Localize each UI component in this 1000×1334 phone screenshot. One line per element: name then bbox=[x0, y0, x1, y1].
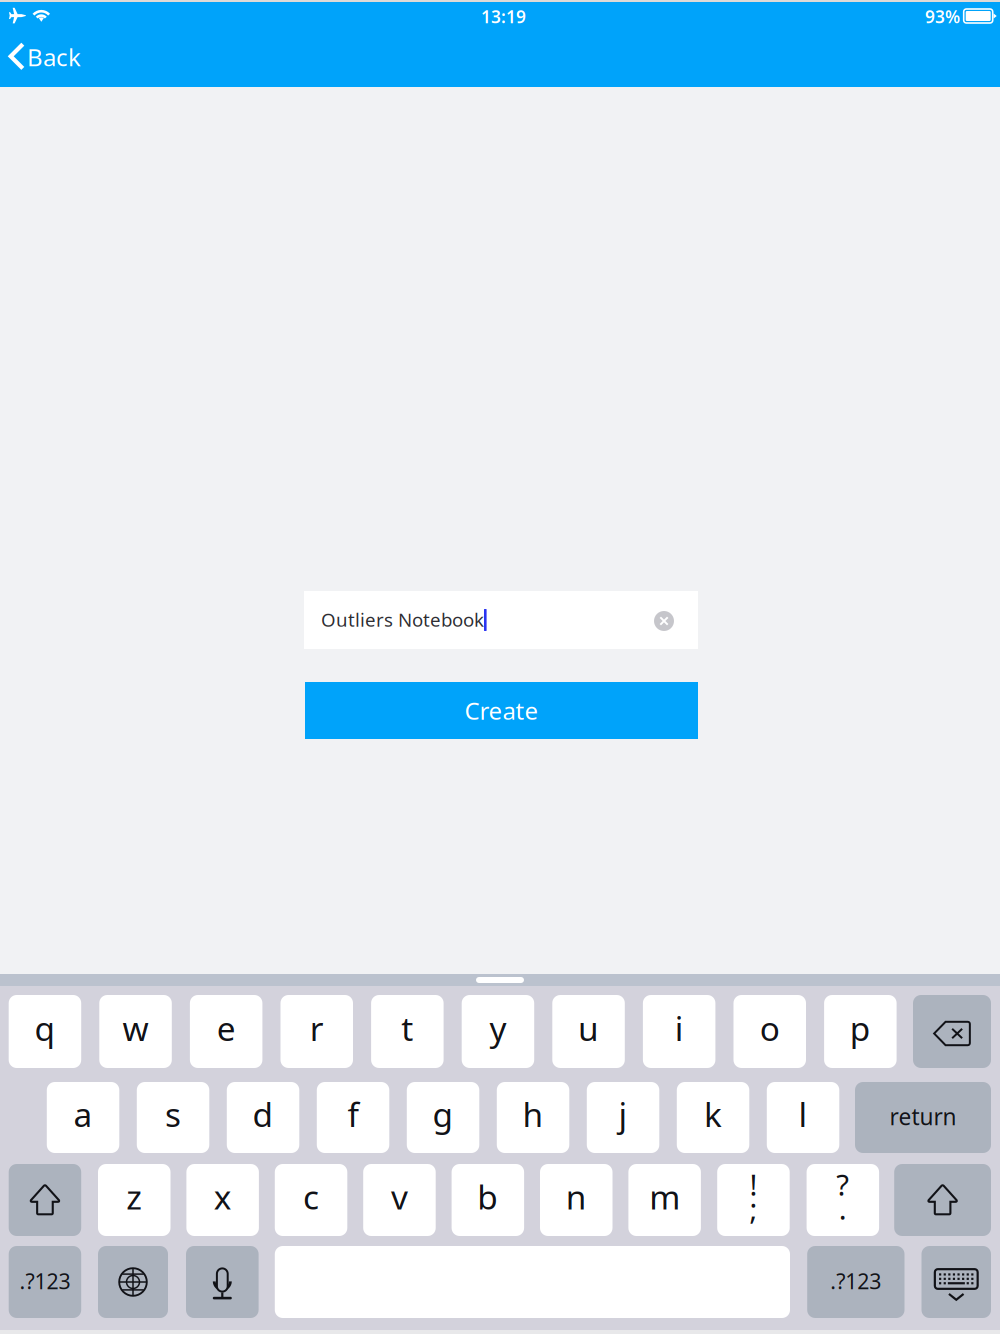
button[interactable]: s bbox=[137, 1082, 209, 1153]
button[interactable]: c bbox=[275, 1164, 347, 1236]
button[interactable]: Shift bbox=[894, 1164, 991, 1236]
button[interactable]: Delete bbox=[913, 995, 991, 1068]
button[interactable]: r bbox=[280, 995, 353, 1068]
button[interactable]: .?123 bbox=[807, 1246, 904, 1318]
button[interactable]: q bbox=[9, 995, 81, 1068]
button[interactable]: d bbox=[227, 1082, 299, 1153]
button[interactable]: p bbox=[824, 995, 897, 1068]
staticText: f bbox=[348, 1092, 359, 1136]
button[interactable]: ? bbox=[807, 1164, 879, 1236]
staticText: o bbox=[760, 1006, 780, 1050]
button[interactable]: x bbox=[186, 1164, 259, 1236]
staticText: ; bbox=[749, 1189, 757, 1228]
button[interactable]: Hide keyboard bbox=[921, 1246, 991, 1318]
staticText: z bbox=[126, 1174, 142, 1219]
button[interactable]: g bbox=[407, 1082, 479, 1153]
button[interactable]: j bbox=[587, 1082, 659, 1153]
button[interactable]: Clear text bbox=[654, 611, 674, 631]
staticText: h bbox=[522, 1092, 543, 1136]
staticText: q bbox=[34, 1006, 55, 1050]
button[interactable]: return bbox=[855, 1082, 991, 1153]
staticText: ! bbox=[749, 1165, 757, 1204]
staticText: d bbox=[253, 1092, 274, 1136]
button[interactable]: Back bbox=[0, 38, 100, 86]
button[interactable]: ! bbox=[717, 1164, 790, 1236]
staticText: . bbox=[839, 1189, 847, 1228]
button[interactable]: b bbox=[452, 1164, 524, 1236]
staticText: Create bbox=[464, 695, 538, 726]
button[interactable]: n bbox=[540, 1164, 612, 1236]
staticText: g bbox=[433, 1092, 454, 1136]
staticText: .?123 bbox=[19, 1267, 70, 1295]
staticText: j bbox=[618, 1092, 627, 1136]
button[interactable]: h bbox=[497, 1082, 569, 1153]
button[interactable]: i bbox=[643, 995, 715, 1068]
button[interactable]: u bbox=[552, 995, 625, 1068]
button[interactable]: Next keyboard bbox=[98, 1246, 168, 1318]
button[interactable]: .?123 bbox=[9, 1246, 81, 1318]
button[interactable]: v bbox=[363, 1164, 436, 1236]
staticText: n bbox=[566, 1174, 587, 1219]
staticText: 93% bbox=[925, 5, 960, 28]
button[interactable]: k bbox=[677, 1082, 749, 1153]
staticText: Back bbox=[27, 41, 81, 73]
staticText: w bbox=[122, 1006, 148, 1050]
staticText: m bbox=[649, 1174, 680, 1219]
staticText: return bbox=[889, 1101, 956, 1131]
button[interactable]: Dictation bbox=[186, 1246, 259, 1318]
button[interactable]: Shift bbox=[9, 1164, 81, 1236]
staticText: 13:19 bbox=[481, 5, 526, 28]
staticText: b bbox=[477, 1174, 498, 1219]
staticText: p bbox=[850, 1006, 871, 1050]
button[interactable]: z bbox=[98, 1164, 170, 1236]
staticText: l bbox=[798, 1092, 807, 1136]
staticText: e bbox=[217, 1006, 236, 1050]
staticText: r bbox=[310, 1006, 324, 1050]
staticText: v bbox=[391, 1174, 408, 1219]
button[interactable]: f bbox=[317, 1082, 389, 1153]
staticText: ? bbox=[836, 1165, 849, 1204]
button[interactable]: Create bbox=[305, 682, 698, 739]
button[interactable]: y bbox=[462, 995, 534, 1068]
button[interactable]: t bbox=[371, 995, 444, 1068]
button[interactable]: o bbox=[733, 995, 806, 1068]
staticText: .?123 bbox=[830, 1267, 881, 1295]
staticText: Outliers Notebook bbox=[321, 607, 484, 632]
staticText: t bbox=[401, 1006, 413, 1050]
staticText: y bbox=[489, 1006, 506, 1050]
staticText: a bbox=[73, 1092, 92, 1136]
button[interactable]: m bbox=[628, 1164, 701, 1236]
staticText: s bbox=[165, 1092, 181, 1136]
staticText: c bbox=[303, 1174, 319, 1219]
staticText: x bbox=[214, 1174, 232, 1219]
staticText: k bbox=[704, 1092, 722, 1136]
button[interactable]: e bbox=[190, 995, 262, 1068]
staticText: u bbox=[578, 1006, 599, 1050]
button[interactable]: l bbox=[767, 1082, 839, 1153]
staticText: i bbox=[675, 1006, 684, 1050]
button[interactable]: w bbox=[99, 995, 172, 1068]
button[interactable]: a bbox=[47, 1082, 119, 1153]
